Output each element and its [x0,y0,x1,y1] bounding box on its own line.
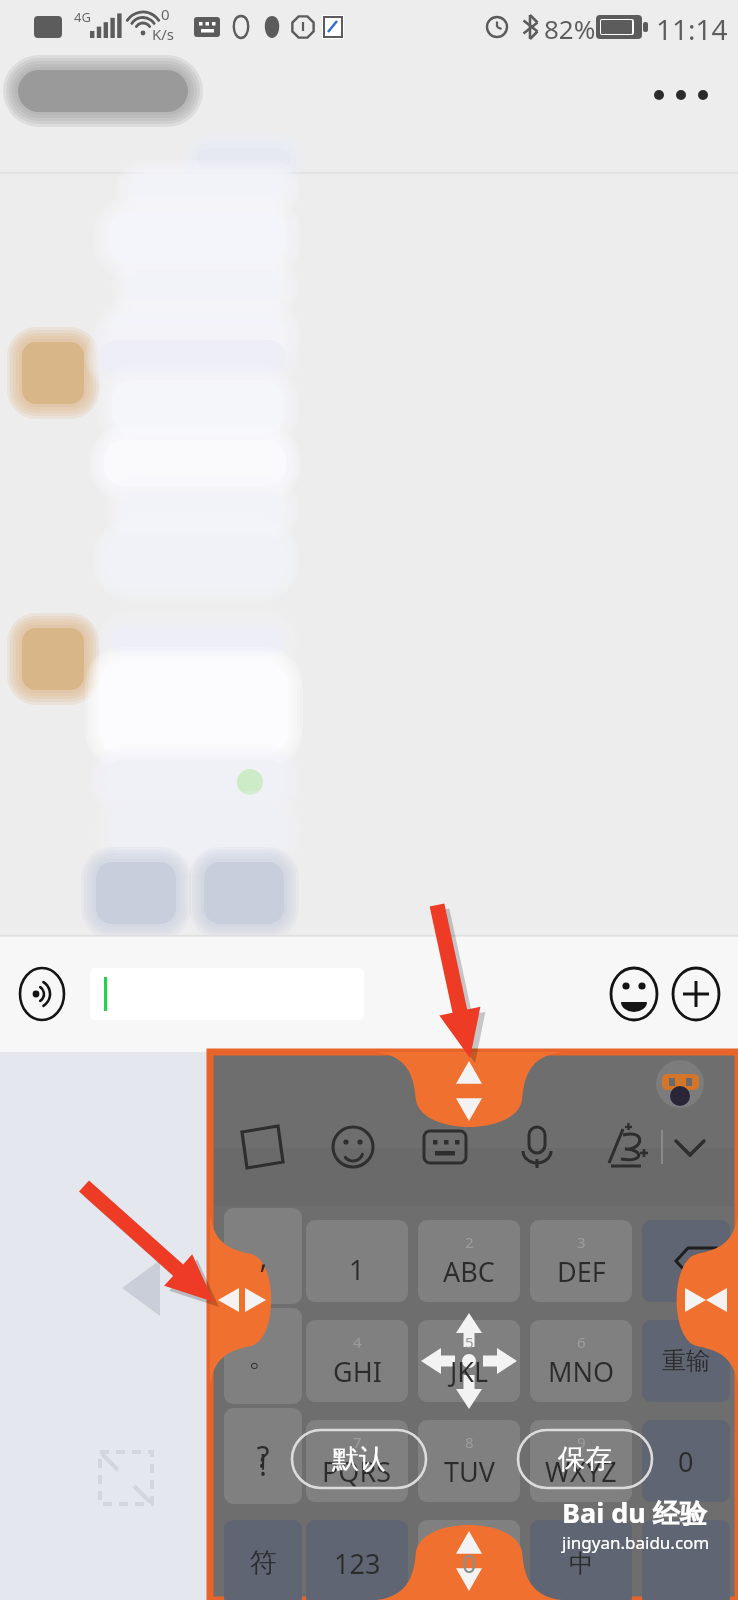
button[interactable]: 1 [306,1220,408,1302]
button[interactable]: 。 [224,1308,302,1404]
staticText: 重输 [662,1346,710,1376]
button[interactable]: 7 [306,1420,408,1502]
button[interactable]: More [668,966,724,1022]
button[interactable]: Backspace [642,1220,730,1302]
staticText: 符 [250,1546,277,1580]
staticText: 2 [465,1232,474,1252]
staticText: WXYZ [545,1453,617,1490]
staticText: GHI [333,1353,382,1390]
button[interactable]: Enter [642,1520,730,1600]
button[interactable]: 中 [530,1520,632,1600]
button[interactable]: Emoji [606,966,662,1022]
button[interactable]: 重输 [642,1320,730,1402]
button[interactable]: Voice input [14,966,70,1022]
staticText: 0 [462,1546,477,1580]
staticText: K/s [152,24,175,44]
staticText: 中 [569,1548,594,1579]
staticText: 1 [349,1251,365,1288]
staticText: 默认 [332,1442,386,1476]
staticText: 4 [353,1332,362,1352]
button[interactable]: , [224,1208,302,1304]
staticText: 。 [248,1337,278,1375]
button[interactable]: 4 [306,1320,408,1402]
staticText: ABC [443,1253,495,1290]
button[interactable]: 8 [418,1420,520,1502]
staticText: 82% [544,11,596,46]
button[interactable]: 0 [418,1520,520,1600]
button[interactable]: 6 [530,1320,632,1402]
staticText: 0 [161,4,170,24]
staticText: 11:14 [656,10,728,48]
staticText: 5 [465,1332,474,1352]
staticText: 0 [678,1443,694,1480]
staticText: JKL [450,1353,489,1390]
staticText: jingyan.baidu.com [562,1531,710,1554]
staticText: ? [256,1436,270,1477]
staticText: 8 [465,1432,474,1452]
button[interactable]: 5 [418,1320,520,1402]
button[interactable]: 9 [530,1420,632,1502]
staticText: 3 [577,1232,586,1252]
button[interactable]: 符 [224,1520,302,1600]
staticText: DEF [557,1253,606,1290]
staticText: PQRS [322,1453,392,1490]
staticText: ! [224,1444,302,1485]
button[interactable] [90,968,364,1020]
button[interactable]: 3 [530,1220,632,1302]
staticText: MNO [548,1353,615,1390]
staticText: 9 [577,1432,586,1452]
staticText: 4G [74,8,91,26]
button[interactable]: 0 [642,1420,730,1502]
button[interactable]: 保存 [516,1428,654,1490]
button[interactable]: ? [224,1408,302,1504]
staticText: Bai du 经验 [562,1494,707,1531]
staticText: 保存 [558,1442,612,1476]
staticText: 123 [334,1545,381,1582]
button[interactable]: 123 [306,1520,408,1600]
staticText: TUV [444,1453,495,1490]
staticText: , [259,1236,268,1277]
button[interactable]: 2 [418,1220,520,1302]
staticText: 6 [577,1332,586,1352]
staticText: 7 [353,1432,362,1452]
button[interactable]: 默认 [290,1428,428,1490]
